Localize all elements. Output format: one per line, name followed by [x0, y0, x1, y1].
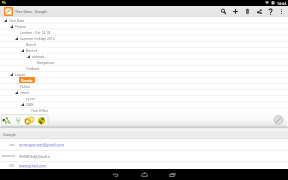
button[interactable]: email: [0, 89, 288, 95]
staticText: Tom Office: [31, 108, 49, 113]
staticText: Google: [3, 132, 16, 137]
staticText: Summer holiday 2014: [20, 36, 55, 41]
button[interactable]: Delete: [241, 6, 253, 17]
button[interactable]: Kangaroos: [0, 59, 288, 65]
button[interactable]: Add entry: [2, 116, 13, 125]
button[interactable]: Help: [264, 6, 276, 17]
button[interactable]: Logins: [0, 71, 288, 77]
button[interactable]: Yahoo: [0, 83, 288, 89]
staticText: user: [9, 143, 15, 147]
staticText: Photos: [15, 24, 27, 29]
button[interactable]: Search: [217, 6, 229, 17]
staticText: tomsuperuser@gmail.com: [19, 142, 64, 147]
staticText: Yahoo: [20, 84, 30, 89]
staticText: animals: [32, 54, 45, 59]
staticText: 14:44: [277, 1, 287, 6]
staticText: Best of: [26, 48, 38, 53]
button[interactable]: Open URL: [36, 116, 47, 125]
button[interactable]: Edit entry: [13, 116, 24, 125]
button[interactable]: Tom Office: [0, 107, 288, 113]
button[interactable]: Back: [108, 169, 122, 180]
staticText: Google: [21, 78, 33, 82]
staticText: Tree Data - Google: [15, 9, 48, 14]
staticText: 9HSHDk4jFj3ovlt-e: [19, 154, 51, 159]
button[interactable]: Tree Data: [0, 17, 288, 23]
button[interactable]: URL: [0, 162, 288, 169]
button[interactable]: password: [0, 151, 288, 161]
button[interactable]: Summer holiday 2014: [0, 35, 288, 41]
staticText: www.gmail.com: [19, 163, 46, 168]
staticText: Logins: [15, 72, 26, 77]
button[interactable]: Best of: [0, 47, 288, 53]
staticText: Lycos: [26, 96, 35, 101]
button[interactable]: Photos: [0, 23, 288, 29]
button[interactable]: Beach: [0, 41, 288, 47]
staticText: Beach: [26, 42, 36, 47]
staticText: GMX: [26, 102, 34, 107]
staticText: Tree Data: [9, 18, 25, 23]
button[interactable]: animals: [0, 53, 288, 59]
button[interactable]: Home: [137, 169, 151, 180]
button[interactable]: Share: [253, 6, 265, 17]
button[interactable]: App icon: [4, 7, 13, 16]
staticText: Outback: [26, 66, 40, 71]
button[interactable]: Recent apps: [165, 169, 179, 180]
button[interactable]: More options: [275, 6, 287, 17]
button[interactable]: GMX: [0, 101, 288, 107]
staticText: Kangaroos: [37, 60, 55, 65]
staticText: email: [20, 90, 29, 95]
button[interactable]: Lycos: [0, 95, 288, 101]
button[interactable]: Google: [0, 131, 288, 138]
staticText: password: [2, 154, 15, 158]
staticText: URL: [9, 164, 15, 168]
button[interactable]: user: [0, 139, 288, 150]
button[interactable]: London - Oct 14-18: [0, 29, 288, 35]
button[interactable]: Google: [0, 77, 288, 83]
button[interactable]: Outback: [0, 65, 288, 71]
button[interactable]: Copy: [24, 116, 35, 125]
staticText: London - Oct 14-18: [20, 30, 51, 35]
button[interactable]: Add: [229, 6, 241, 17]
